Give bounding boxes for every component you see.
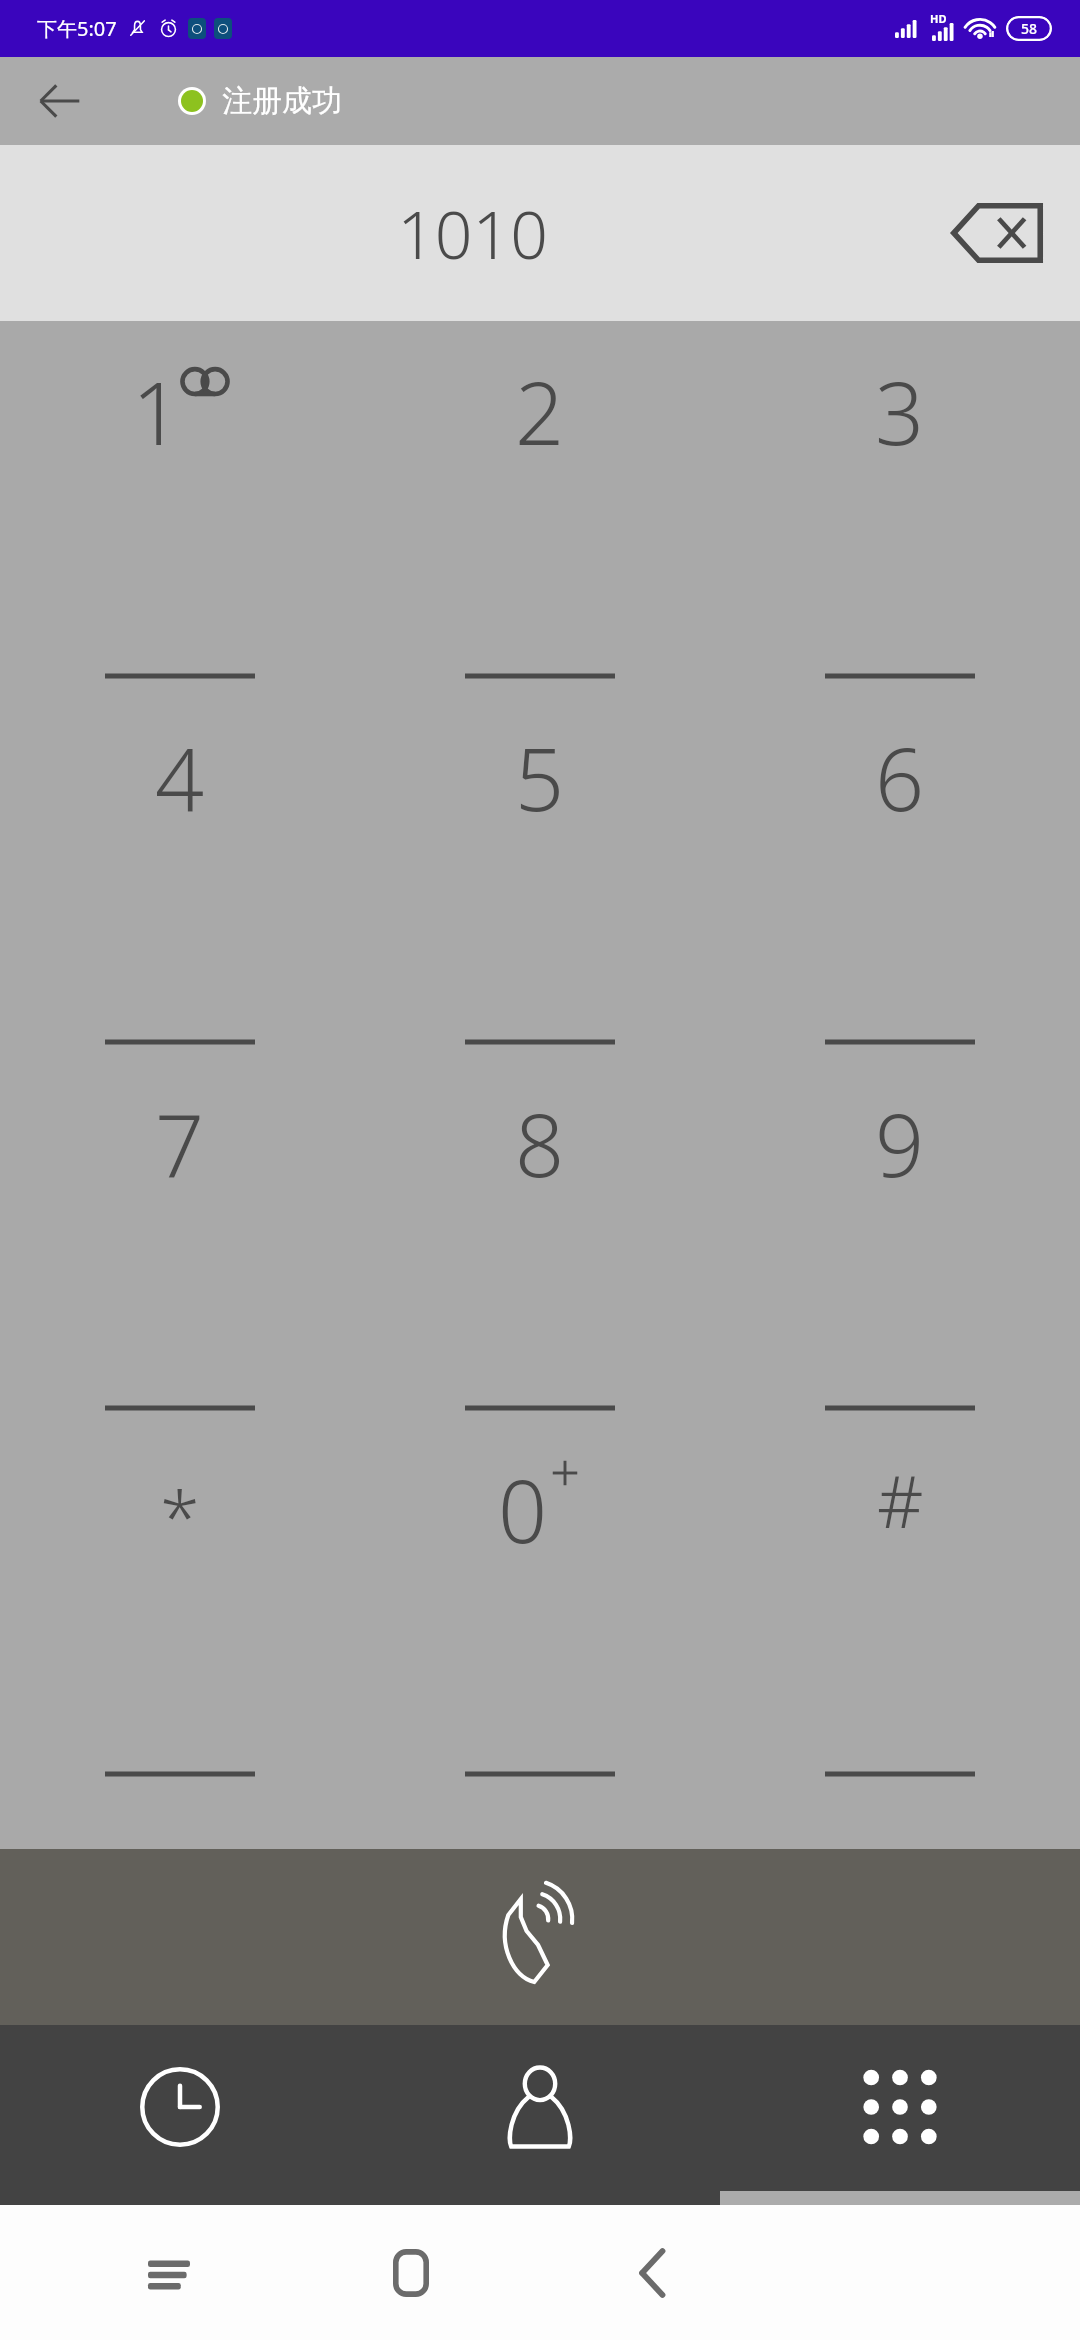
staticText: 3 [875,353,925,470]
staticText: 注册成功 [222,82,342,120]
button[interactable]: Dialpad [720,2025,1080,2205]
button[interactable]: 9 [720,1079,1080,1445]
staticText: 4 [155,719,205,836]
button[interactable]: # [720,1445,1080,1811]
button[interactable]: Call [0,1849,1080,2025]
button[interactable]: Backspace [938,183,1056,283]
button[interactable]: Back [28,69,92,133]
staticText: * [160,1467,200,1565]
button[interactable]: 7 [0,1079,360,1445]
staticText: 5 [515,719,565,836]
button[interactable]: 2 [360,347,720,713]
button[interactable]: 6 [720,713,1080,1079]
button[interactable]: 4 [0,713,360,1079]
staticText: 2 [515,353,565,470]
staticText: 8 [515,1085,565,1202]
staticText: 1 [132,353,182,470]
staticText: HD [930,11,947,26]
staticText: 7 [155,1085,205,1202]
button[interactable]: 5 [360,713,720,1079]
button[interactable]: * [0,1445,360,1811]
button[interactable]: Home [363,2225,459,2321]
staticText: 9 [875,1085,925,1202]
staticText: # [877,1451,924,1549]
staticText: 6 [875,719,925,836]
button[interactable]: Contacts [360,2025,720,2205]
button[interactable]: Back [605,2225,701,2321]
staticText: 58 [1021,19,1038,38]
staticText: 0 [498,1451,548,1568]
button[interactable]: 8 [360,1079,720,1445]
button[interactable]: 1 [0,347,360,713]
button[interactable]: 3 [720,347,1080,713]
button[interactable]: Recent apps [121,2225,217,2321]
staticText: 1010 [397,188,548,278]
staticText: 下午5:07 [37,15,117,42]
button[interactable]: Recents [0,2025,360,2205]
button[interactable]: 0 [360,1445,720,1811]
